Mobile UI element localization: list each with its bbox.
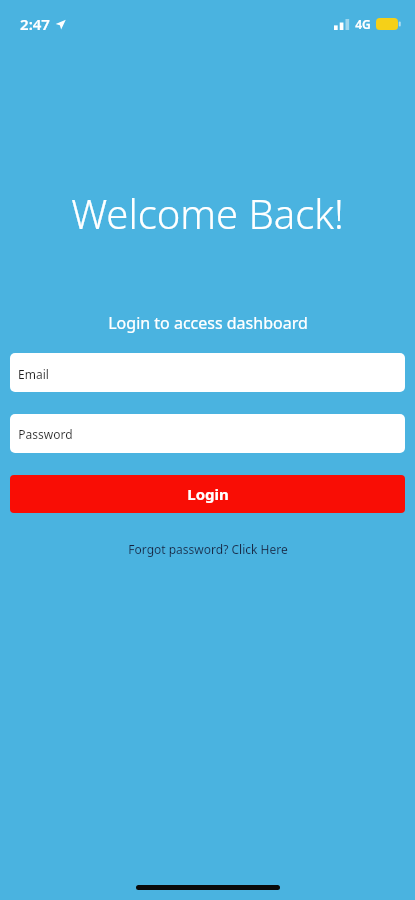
button[interactable]: Password — [10, 414, 405, 453]
other: Location active — [55, 19, 66, 30]
staticText: Password — [18, 426, 73, 442]
staticText: 2:47 — [20, 14, 50, 34]
staticText: Login — [187, 484, 229, 504]
button[interactable]: Email — [10, 353, 405, 392]
staticText: Welcome Back! — [71, 186, 344, 240]
other: Cellular signal — [334, 19, 351, 30]
button[interactable]: Forgot password? Click Here — [116, 537, 300, 561]
staticText: Login to access dashboard — [108, 312, 308, 334]
staticText: Forgot password? Click Here — [128, 541, 288, 557]
button[interactable]: Login — [10, 475, 405, 513]
other: Battery — [376, 18, 401, 30]
staticText: 4G — [355, 16, 371, 32]
staticText: Email — [18, 366, 49, 382]
